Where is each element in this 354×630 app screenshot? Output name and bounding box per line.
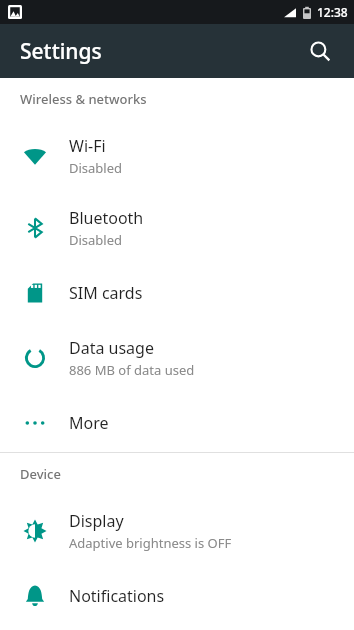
staticText: SIM cards <box>69 282 143 304</box>
button[interactable]: More <box>0 394 354 452</box>
staticText: Disabled <box>69 231 123 249</box>
staticText: 886 MB of data used <box>69 361 195 379</box>
staticText: Disabled <box>69 159 123 177</box>
staticText: Device <box>20 465 61 483</box>
button[interactable]: SIM cards <box>0 264 354 322</box>
staticText: Display <box>69 510 124 532</box>
button[interactable]: Search <box>298 29 342 73</box>
staticText: 12:38 <box>317 4 348 20</box>
staticText: Settings <box>20 37 102 66</box>
button[interactable]: Bluetooth <box>0 192 354 264</box>
button[interactable]: Wi-Fi <box>0 120 354 192</box>
staticText: Bluetooth <box>69 207 144 229</box>
button[interactable]: Notifications <box>0 567 354 625</box>
staticText: Adaptive brightness is OFF <box>69 534 232 552</box>
button[interactable]: Data usage <box>0 322 354 394</box>
button[interactable]: Display <box>0 495 354 567</box>
staticText: Data usage <box>69 337 154 359</box>
staticText: Wireless & networks <box>20 90 147 108</box>
staticText: More <box>69 412 109 434</box>
staticText: Wi-Fi <box>69 135 106 157</box>
staticText: Notifications <box>69 585 165 607</box>
